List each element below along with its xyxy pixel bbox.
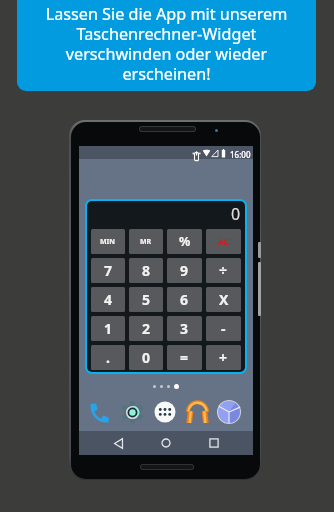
button[interactable]: - (206, 316, 241, 341)
staticText: = (180, 348, 189, 367)
button[interactable]: 2 (129, 316, 163, 341)
staticText: 3 (180, 319, 189, 338)
staticText: ÷ (219, 261, 228, 280)
button[interactable]: 8 (129, 258, 163, 283)
button[interactable]: 4 (91, 287, 125, 312)
button[interactable]: X (206, 287, 241, 312)
staticText: 5 (142, 290, 151, 309)
button[interactable]: Phone (86, 399, 112, 425)
staticText: 4 (104, 290, 113, 309)
button[interactable]: Recents (202, 431, 226, 455)
button[interactable]: Settings (119, 399, 145, 425)
button[interactable]: 6 (167, 287, 202, 312)
button[interactable]: 7 (91, 258, 125, 283)
staticText: 2 (142, 319, 151, 338)
button[interactable]: 9 (167, 258, 202, 283)
button[interactable]: Apps (152, 399, 178, 425)
button[interactable]: 3 (167, 316, 202, 341)
button[interactable]: AC (206, 229, 241, 254)
staticText: + (219, 348, 228, 367)
button[interactable]: MIN (91, 229, 125, 254)
staticText: 1 (104, 319, 113, 338)
staticText: MIN (100, 237, 116, 247)
staticText: 0 (142, 348, 151, 367)
staticText: 6 (180, 290, 189, 309)
button[interactable]: Home (154, 431, 178, 455)
button[interactable]: 0 (129, 345, 163, 370)
staticText: . (106, 348, 110, 367)
button[interactable]: Files (216, 399, 242, 425)
staticText: 0 (231, 203, 241, 225)
button[interactable]: 5 (129, 287, 163, 312)
staticText: 16:00 (230, 149, 251, 160)
staticText: 7 (104, 261, 113, 280)
button[interactable]: . (91, 345, 125, 370)
button[interactable]: ÷ (206, 258, 241, 283)
button[interactable]: Music (184, 399, 210, 425)
button[interactable]: + (206, 345, 241, 370)
button[interactable]: % (167, 229, 202, 254)
button[interactable]: Lassen Sie die App mit unserem Taschenre… (17, 0, 316, 91)
button[interactable]: = (167, 345, 202, 370)
staticText: Lassen Sie die App mit unserem Taschenre… (17, 3, 316, 85)
staticText: AC (218, 236, 229, 247)
button[interactable]: Back (106, 431, 130, 455)
staticText: 9 (180, 261, 189, 280)
staticText: MR (140, 237, 152, 247)
staticText: X (219, 290, 229, 309)
button[interactable]: MR (129, 229, 163, 254)
staticText: - (221, 319, 226, 338)
staticText: 8 (142, 261, 151, 280)
staticText: % (179, 233, 191, 250)
button[interactable]: 1 (91, 316, 125, 341)
